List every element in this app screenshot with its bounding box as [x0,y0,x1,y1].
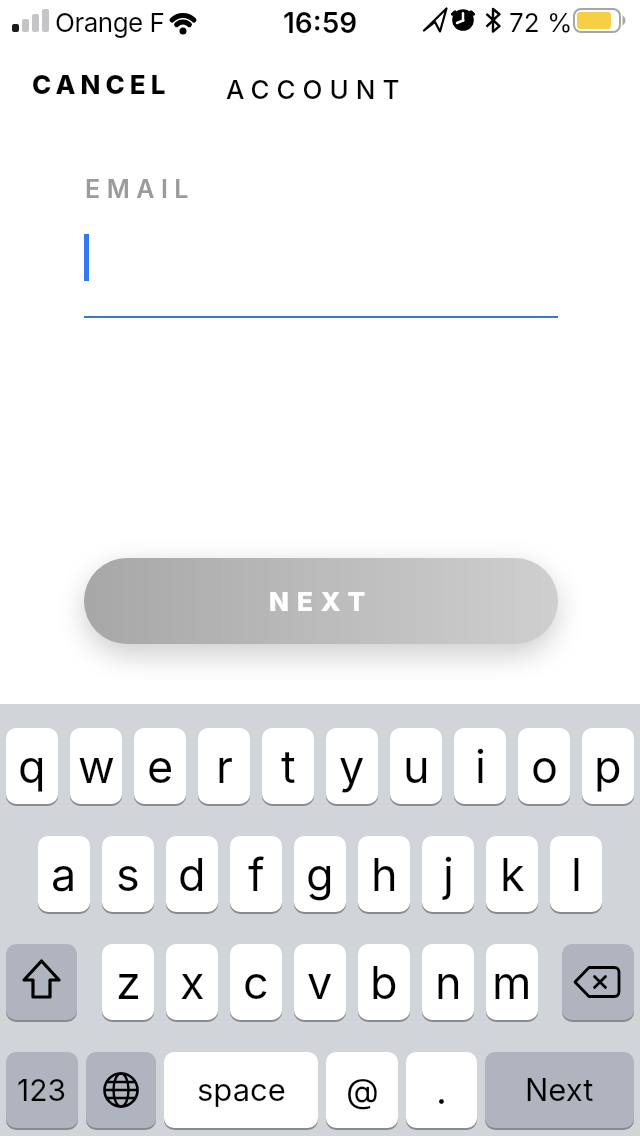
button[interactable]: t [262,728,314,804]
button[interactable]: r [198,728,250,804]
button[interactable]: p [582,728,634,804]
button[interactable]: CANCEL [22,59,181,110]
staticText: q [18,739,46,793]
staticText: 16:59 [283,6,358,40]
button[interactable]: n [422,944,474,1020]
button[interactable]: j [422,836,474,912]
button[interactable]: z [102,944,154,1020]
staticText: o [531,739,558,793]
button[interactable]: c [230,944,282,1020]
button[interactable]: NEXT [84,558,558,644]
staticText: 123 [17,1072,67,1108]
staticText: space [197,1071,286,1109]
staticText: u [403,739,430,793]
staticText: a [51,847,77,901]
staticText: g [306,847,334,901]
button[interactable] [86,1052,156,1128]
staticText: r [216,739,233,793]
staticText: 72 % [509,7,573,38]
button[interactable]: v [294,944,346,1020]
staticText: k [500,847,525,901]
staticText: Orange F [55,7,165,38]
button[interactable]: 123 [6,1052,78,1128]
staticText: Next [525,1071,594,1109]
button[interactable]: space [164,1052,318,1128]
staticText: b [370,955,398,1009]
button[interactable]: h [358,836,410,912]
staticText: v [307,955,333,1009]
staticText: ACCOUNT [226,74,407,105]
button[interactable]: d [166,836,218,912]
button[interactable]: s [102,836,154,912]
button[interactable]: i [454,728,506,804]
staticText: c [243,955,269,1009]
button[interactable]: y [326,728,378,804]
staticText: j [443,847,454,901]
button[interactable]: . [406,1052,477,1128]
button[interactable]: a [38,836,90,912]
staticText: z [116,955,141,1009]
staticText: NEXT [269,586,374,617]
button[interactable]: k [486,836,538,912]
staticText: h [371,847,398,901]
button[interactable]: l [550,836,602,912]
staticText: f [248,847,265,901]
button[interactable]: b [358,944,410,1020]
staticText: x [180,955,205,1009]
button[interactable]: u [390,728,442,804]
staticText: l [571,847,582,901]
staticText: m [492,955,532,1009]
staticText: t [281,739,296,793]
button[interactable]: e [134,728,186,804]
staticText: i [475,739,486,793]
staticText: p [594,739,622,793]
button[interactable]: @ [326,1052,398,1128]
button[interactable]: g [294,836,346,912]
staticText: y [339,739,365,793]
button[interactable]: x [166,944,218,1020]
button[interactable]: Next [485,1052,634,1128]
staticText: EMAIL [85,174,195,204]
button[interactable]: o [518,728,570,804]
staticText: w [78,739,115,793]
button[interactable]: w [70,728,122,804]
staticText: e [147,739,174,793]
button[interactable]: q [6,728,58,804]
staticText: @ [346,1070,379,1111]
button[interactable] [6,944,77,1020]
button[interactable] [562,944,634,1020]
staticText: n [435,955,462,1009]
staticText: s [116,847,140,901]
button[interactable]: m [486,944,538,1020]
staticText: d [178,847,206,901]
button[interactable]: f [230,836,282,912]
staticText: . [436,1067,447,1113]
staticText: CANCEL [32,69,171,100]
